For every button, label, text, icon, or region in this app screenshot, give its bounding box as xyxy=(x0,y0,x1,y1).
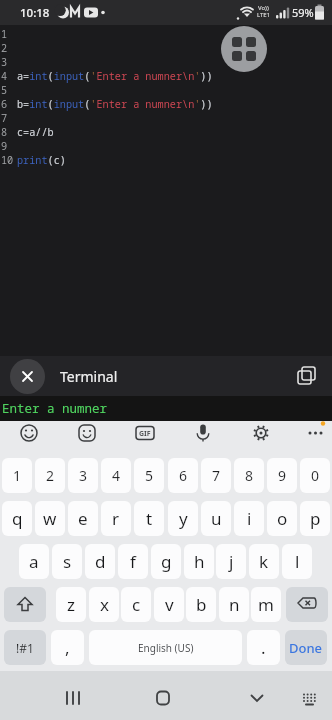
staticText: 10:18 xyxy=(20,5,50,21)
button[interactable] xyxy=(112,421,167,450)
staticText: 3 xyxy=(1,55,14,69)
staticText: f xyxy=(130,550,136,573)
button[interactable]: x xyxy=(89,587,119,622)
button[interactable]: 8 xyxy=(234,458,264,493)
staticText: 5 xyxy=(145,466,154,485)
staticText: z xyxy=(67,593,75,616)
staticText: c xyxy=(132,593,141,616)
button[interactable]: y xyxy=(168,501,198,536)
button[interactable]: s xyxy=(52,544,82,579)
button[interactable] xyxy=(0,671,110,720)
staticText: l xyxy=(295,550,300,573)
staticText: LTE1 xyxy=(257,11,271,19)
button[interactable]: d xyxy=(85,544,115,579)
staticText: n xyxy=(229,593,240,616)
staticText: 3 xyxy=(79,466,88,485)
button[interactable]: 3 xyxy=(68,458,98,493)
staticText: u xyxy=(211,507,222,530)
staticText: 5 xyxy=(1,83,14,97)
button[interactable]: English (US) xyxy=(89,630,242,665)
staticText: i xyxy=(247,507,252,530)
button[interactable]: m xyxy=(251,587,281,622)
button[interactable]: v xyxy=(154,587,184,622)
button[interactable] xyxy=(277,421,332,450)
button[interactable]: i xyxy=(234,501,264,536)
button[interactable]: 9 xyxy=(267,458,297,493)
staticText: y xyxy=(179,507,188,530)
button[interactable]: 0 xyxy=(300,458,330,493)
button[interactable]: a xyxy=(19,544,49,579)
staticText: j xyxy=(229,550,234,573)
staticText: English (US) xyxy=(138,641,194,655)
button[interactable]: b xyxy=(186,587,216,622)
button[interactable]: j xyxy=(216,544,246,579)
button[interactable]: 6 xyxy=(168,458,198,493)
staticText: b xyxy=(196,593,207,616)
button[interactable]: z xyxy=(56,587,86,622)
staticText: s xyxy=(63,550,72,573)
button[interactable]: 1 xyxy=(2,458,32,493)
button[interactable] xyxy=(4,587,46,622)
button[interactable]: w xyxy=(35,501,65,536)
button[interactable]: u xyxy=(201,501,231,536)
button[interactable]: l xyxy=(282,544,312,579)
staticText: 6 xyxy=(1,97,14,111)
staticText: !#1 xyxy=(16,640,34,656)
staticText: t xyxy=(146,507,153,530)
staticText: v xyxy=(165,593,174,616)
staticText: 6 xyxy=(179,466,188,485)
staticText: 59% xyxy=(292,5,314,20)
button[interactable] xyxy=(221,26,267,72)
staticText: Vo)) xyxy=(258,4,269,12)
staticText: q xyxy=(12,507,23,530)
button[interactable]: p xyxy=(300,501,330,536)
button[interactable]: 2 xyxy=(35,458,65,493)
button[interactable] xyxy=(222,421,277,450)
button[interactable]: c xyxy=(121,587,151,622)
staticText: 2 xyxy=(46,466,55,485)
staticText: e xyxy=(78,507,88,530)
button[interactable] xyxy=(286,587,328,622)
button[interactable] xyxy=(10,359,45,394)
button[interactable]: . xyxy=(247,630,280,665)
button[interactable]: n xyxy=(219,587,249,622)
button[interactable]: t xyxy=(134,501,164,536)
staticText: , xyxy=(65,636,70,659)
staticText: Enter a numner xyxy=(2,400,108,417)
button[interactable]: , xyxy=(51,630,84,665)
staticText: 7 xyxy=(212,466,221,485)
staticText: w xyxy=(43,507,57,530)
button[interactable]: r xyxy=(101,501,131,536)
button[interactable]: f xyxy=(118,544,148,579)
staticText: 1 xyxy=(1,27,14,41)
staticText: 2 xyxy=(1,41,14,55)
staticText: k xyxy=(259,550,269,573)
staticText: 4 xyxy=(1,69,14,83)
button[interactable]: o xyxy=(267,501,297,536)
button[interactable]: e xyxy=(68,501,98,536)
button[interactable]: h xyxy=(184,544,214,579)
button[interactable] xyxy=(56,421,112,450)
staticText: 9 xyxy=(1,139,14,153)
button[interactable]: k xyxy=(249,544,279,579)
button[interactable] xyxy=(295,364,319,388)
button[interactable] xyxy=(167,421,222,450)
staticText: x xyxy=(100,593,109,616)
button[interactable]: Done xyxy=(285,630,327,665)
staticText: 4 xyxy=(112,466,121,485)
staticText: b=int(input('Enter a numner\n')) xyxy=(17,97,213,111)
button[interactable] xyxy=(110,671,221,720)
button[interactable] xyxy=(0,421,56,450)
button[interactable]: !#1 xyxy=(4,630,46,665)
button[interactable]: 7 xyxy=(201,458,231,493)
button[interactable]: 4 xyxy=(101,458,131,493)
staticText: print(c) xyxy=(17,153,66,167)
staticText: 8 xyxy=(1,125,14,139)
button[interactable] xyxy=(221,671,332,720)
staticText: a xyxy=(29,550,39,573)
button[interactable]: 5 xyxy=(134,458,164,493)
staticText: m xyxy=(258,593,274,616)
staticText: 7 xyxy=(1,111,14,125)
button[interactable]: q xyxy=(2,501,32,536)
button[interactable]: g xyxy=(151,544,181,579)
